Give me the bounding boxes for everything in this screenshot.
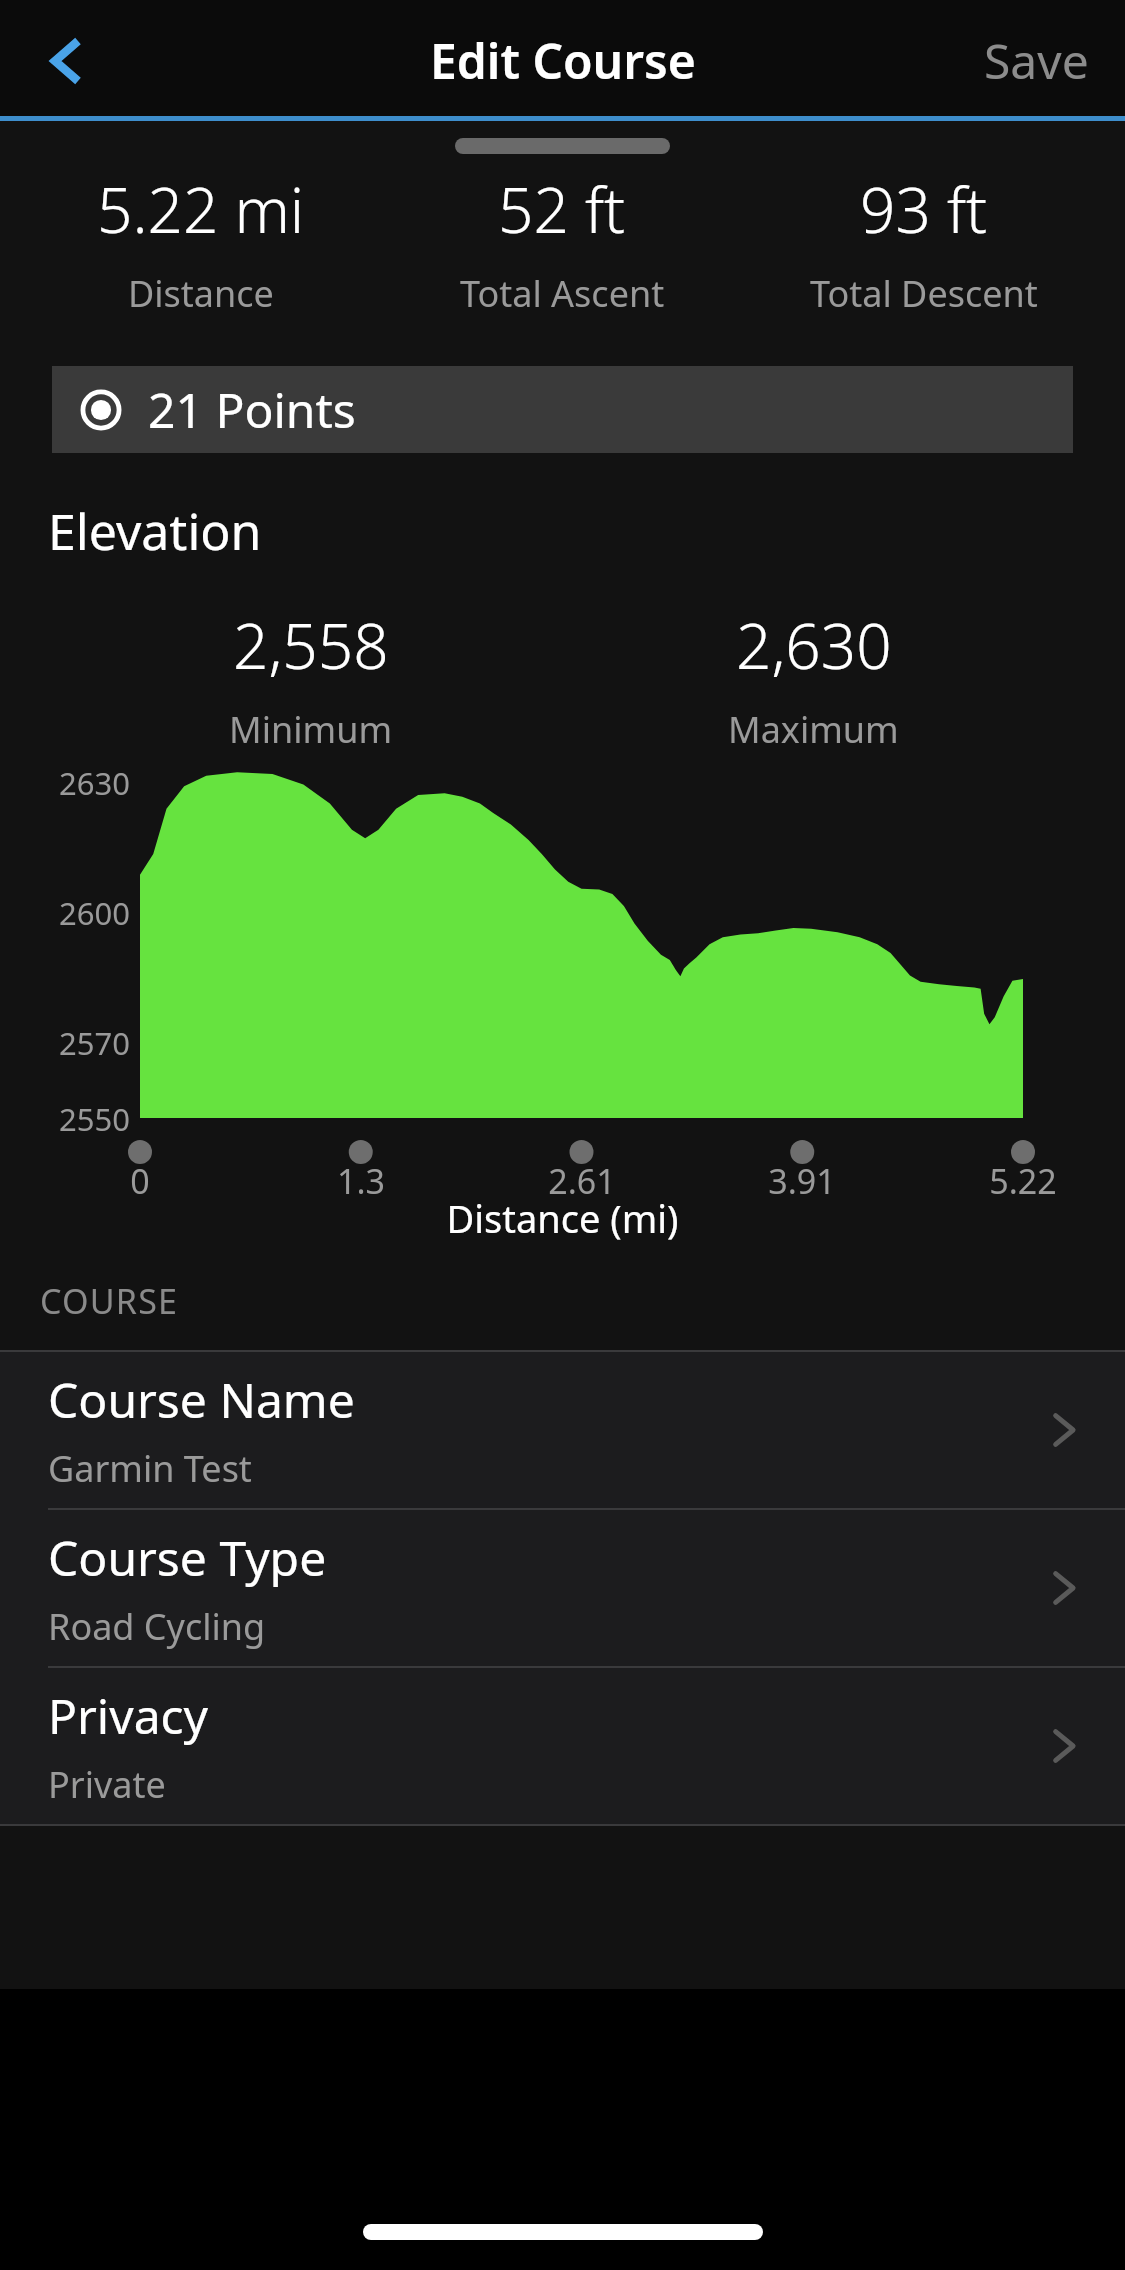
staticText: 5.22	[963, 1158, 1083, 1204]
staticText: Minimum	[229, 705, 393, 754]
staticText: Private	[48, 1760, 166, 1809]
staticText: Distance (mi)	[0, 1192, 1125, 1244]
staticText: Garmin Test	[48, 1444, 252, 1493]
staticText: Maximum	[728, 705, 899, 754]
staticText: 52 ft	[498, 167, 626, 251]
button[interactable]: Course Type	[0, 1510, 1125, 1666]
staticText: 2570	[30, 1022, 130, 1064]
staticText: COURSE	[40, 1278, 179, 1324]
staticText: Edit Course	[430, 28, 696, 93]
staticText: Course Type	[48, 1525, 327, 1590]
button[interactable]: Course Name	[0, 1352, 1125, 1508]
staticText: 21 Points	[148, 377, 356, 442]
staticText: 3.91	[742, 1158, 862, 1204]
button[interactable]: Save	[948, 8, 1125, 113]
button[interactable]: Privacy	[0, 1668, 1125, 1824]
staticText: Distance	[128, 269, 274, 318]
staticText: 5.22 mi	[97, 167, 305, 251]
staticText: 2600	[30, 892, 130, 934]
button[interactable]: Back	[22, 16, 112, 106]
staticText: 0	[80, 1158, 200, 1204]
staticText: Save	[984, 28, 1089, 93]
staticText: Elevation	[48, 497, 262, 565]
staticText: 2,558	[233, 603, 389, 687]
staticText: 2550	[30, 1098, 130, 1140]
staticText: 2630	[30, 762, 130, 804]
staticText: Road Cycling	[48, 1602, 266, 1651]
staticText: 93 ft	[860, 167, 988, 251]
staticText: 2,630	[736, 603, 892, 687]
staticText: Total Descent	[810, 269, 1038, 318]
button[interactable]: 21 Points	[52, 366, 1073, 453]
staticText: Privacy	[48, 1683, 209, 1748]
staticText: Course Name	[48, 1367, 355, 1432]
staticText: 2.61	[522, 1158, 642, 1204]
staticText: Total Ascent	[460, 269, 665, 318]
staticText: 1.3	[301, 1158, 421, 1204]
